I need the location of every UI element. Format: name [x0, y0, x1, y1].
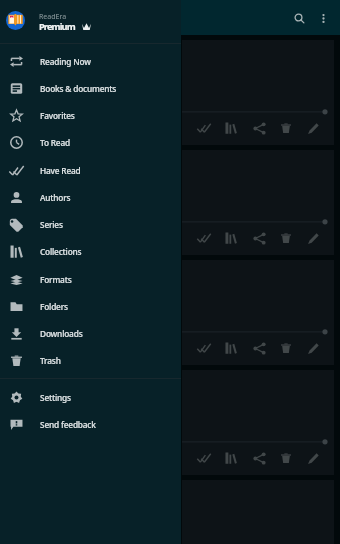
button[interactable]: Favorites: [0, 102, 181, 129]
button[interactable]: Collections: [219, 116, 243, 140]
button[interactable]: Delete: [274, 226, 298, 250]
staticText: Premium: [39, 20, 75, 33]
button[interactable]: Authors: [0, 184, 181, 211]
staticText: Folders: [40, 301, 68, 312]
button[interactable]: Send feedback: [0, 411, 181, 438]
button[interactable]: Search: [283, 2, 316, 35]
button[interactable]: To Read: [0, 129, 181, 156]
staticText: Reading Now: [40, 56, 91, 67]
button[interactable]: Downloads: [0, 320, 181, 347]
button[interactable]: Delete: [274, 336, 298, 360]
button[interactable]: Series: [0, 211, 181, 238]
button[interactable]: Delete: [274, 446, 298, 470]
button[interactable]: Collections: [219, 336, 243, 360]
button[interactable]: Mark as read: [192, 336, 216, 360]
staticText: Favorites: [40, 110, 75, 121]
button[interactable]: Mark as read: [182, 40, 334, 145]
button[interactable]: Mark as read: [182, 150, 334, 255]
button[interactable]: Reading Now: [0, 48, 181, 75]
staticText: Series: [40, 219, 63, 230]
staticText: Trash: [40, 355, 61, 366]
button[interactable]: Share: [247, 336, 271, 360]
button[interactable]: Delete: [274, 116, 298, 140]
button[interactable]: Have Read: [0, 157, 181, 184]
button[interactable]: Trash: [0, 347, 181, 374]
staticText: Downloads: [40, 328, 83, 339]
button[interactable]: Mark as read: [182, 370, 334, 475]
button[interactable]: Formats: [0, 266, 181, 293]
button[interactable]: More options: [307, 2, 340, 35]
button[interactable]: Edit: [301, 116, 325, 140]
button[interactable]: Share: [247, 116, 271, 140]
button[interactable]: Share: [247, 226, 271, 250]
button[interactable]: Collections: [219, 226, 243, 250]
button[interactable]: Edit: [301, 226, 325, 250]
button[interactable]: Edit: [301, 446, 325, 470]
button[interactable]: Collections: [0, 238, 181, 265]
staticText: Formats: [40, 274, 72, 285]
button[interactable]: Mark as read: [182, 260, 334, 365]
button[interactable]: Edit: [301, 336, 325, 360]
staticText: Collections: [40, 246, 82, 257]
button[interactable]: Collections: [219, 446, 243, 470]
staticText: ReadEra: [39, 12, 67, 22]
button[interactable]: Mark as read: [192, 226, 216, 250]
button[interactable]: ReadEra: [0, 0, 181, 43]
button[interactable]: Settings: [0, 384, 181, 411]
staticText: Authors: [40, 192, 71, 203]
button[interactable]: Share: [247, 446, 271, 470]
button[interactable]: Mark as read: [192, 116, 216, 140]
staticText: Settings: [40, 392, 71, 403]
staticText: To Read: [40, 137, 70, 148]
button[interactable]: Folders: [0, 293, 181, 320]
button[interactable]: Mark as read: [192, 446, 216, 470]
staticText: Send feedback: [40, 419, 96, 430]
staticText: Books & documents: [40, 83, 117, 94]
button[interactable]: Books & documents: [0, 75, 181, 102]
staticText: Have Read: [40, 165, 81, 176]
